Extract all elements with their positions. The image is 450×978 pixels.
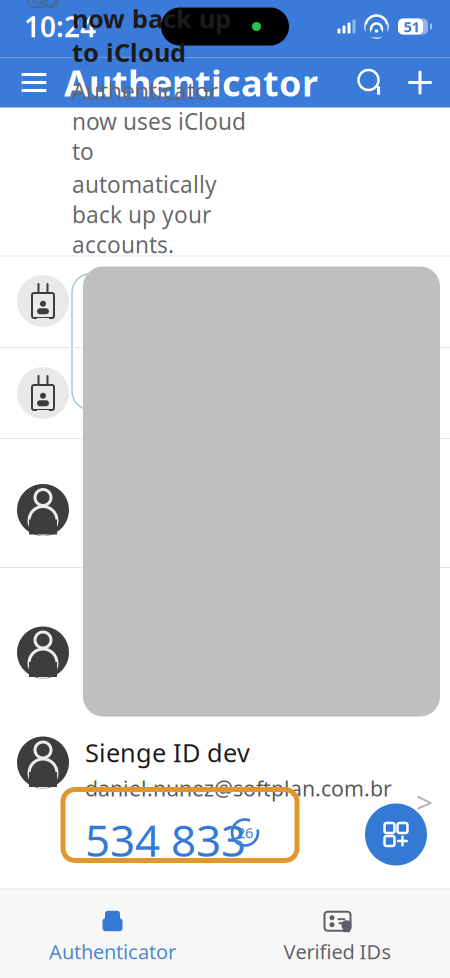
staticText: > bbox=[416, 782, 433, 821]
button[interactable]: Menu bbox=[10, 57, 58, 107]
staticText: Authenticator bbox=[64, 59, 318, 106]
button[interactable]: Add account bbox=[394, 57, 446, 107]
staticText: Verified IDs bbox=[283, 938, 391, 965]
staticText: Your accounts now back up to iCloud bbox=[72, 0, 250, 69]
button[interactable]: Verified IDs bbox=[225, 905, 450, 969]
staticText: 51 bbox=[403, 17, 419, 36]
button[interactable]: Sienge ID dev bbox=[0, 722, 450, 869]
button[interactable]: Scan QR code bbox=[365, 803, 427, 865]
staticText: daniel.nunez@softplan.com.br bbox=[85, 774, 392, 802]
staticText: Sienge ID dev bbox=[85, 735, 250, 769]
staticText: automatically back up your accounts. bbox=[72, 169, 217, 260]
staticText: Authenticator now uses iCloud to bbox=[72, 76, 246, 166]
button[interactable]: Search bbox=[348, 57, 394, 107]
staticText: Authenticator bbox=[49, 938, 176, 965]
button[interactable]: Authenticator bbox=[0, 905, 225, 969]
button[interactable]: Learn More bbox=[72, 274, 161, 410]
staticText: 10:24 bbox=[24, 8, 96, 45]
staticText: 534 833 bbox=[85, 810, 246, 869]
staticText: 26 bbox=[237, 823, 253, 842]
